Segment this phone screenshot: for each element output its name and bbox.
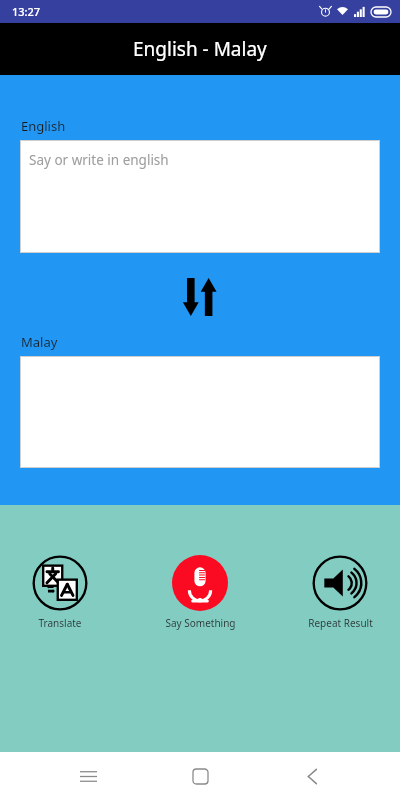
staticText: Say or write in english bbox=[29, 151, 169, 169]
staticText: Say Something bbox=[165, 616, 236, 630]
button[interactable]: Back bbox=[288, 752, 336, 800]
button[interactable]: Say Something bbox=[154, 553, 246, 632]
staticText: 13:27 bbox=[12, 4, 41, 19]
button[interactable]: Say or write in english bbox=[20, 140, 380, 253]
button[interactable]: Repeat Result bbox=[294, 553, 386, 632]
staticText: Translate bbox=[38, 616, 82, 630]
button[interactable] bbox=[20, 356, 380, 468]
button[interactable]: Swap languages bbox=[178, 275, 222, 319]
staticText: English bbox=[21, 117, 66, 135]
staticText: English - Malay bbox=[133, 36, 267, 62]
staticText: Malay bbox=[21, 333, 58, 351]
button[interactable]: Translate bbox=[14, 553, 106, 632]
button[interactable]: Home bbox=[176, 752, 224, 800]
staticText: Repeat Result bbox=[308, 616, 373, 630]
button[interactable]: Recent apps bbox=[64, 752, 112, 800]
